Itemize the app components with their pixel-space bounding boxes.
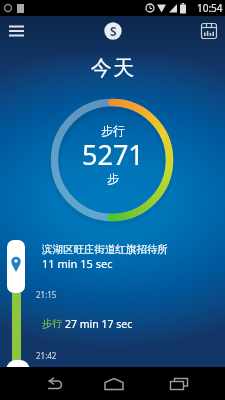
button[interactable]: 步行 bbox=[42, 317, 133, 331]
staticText: 步行 bbox=[101, 123, 125, 138]
staticText: 步行 bbox=[42, 317, 62, 330]
button[interactable] bbox=[7, 240, 25, 293]
button[interactable] bbox=[164, 367, 194, 400]
button[interactable]: S bbox=[102, 20, 124, 42]
button[interactable] bbox=[193, 16, 225, 46]
staticText: 21:42 bbox=[36, 350, 57, 361]
staticText: S bbox=[110, 23, 117, 39]
staticText: 今天 bbox=[90, 55, 135, 81]
staticText: 10:54 bbox=[197, 1, 223, 15]
button[interactable]: 滨湖区旺庄街道红旗招待所 bbox=[42, 243, 168, 256]
staticText: 21:15 bbox=[36, 289, 57, 300]
staticText: 11 min 15 sec bbox=[42, 256, 113, 271]
staticText: 5271 bbox=[82, 136, 144, 173]
staticText: 27 min 17 sec bbox=[65, 317, 133, 331]
staticText: 步 bbox=[107, 171, 119, 186]
button[interactable] bbox=[0, 16, 32, 46]
button[interactable] bbox=[38, 367, 68, 400]
button[interactable] bbox=[99, 367, 129, 400]
